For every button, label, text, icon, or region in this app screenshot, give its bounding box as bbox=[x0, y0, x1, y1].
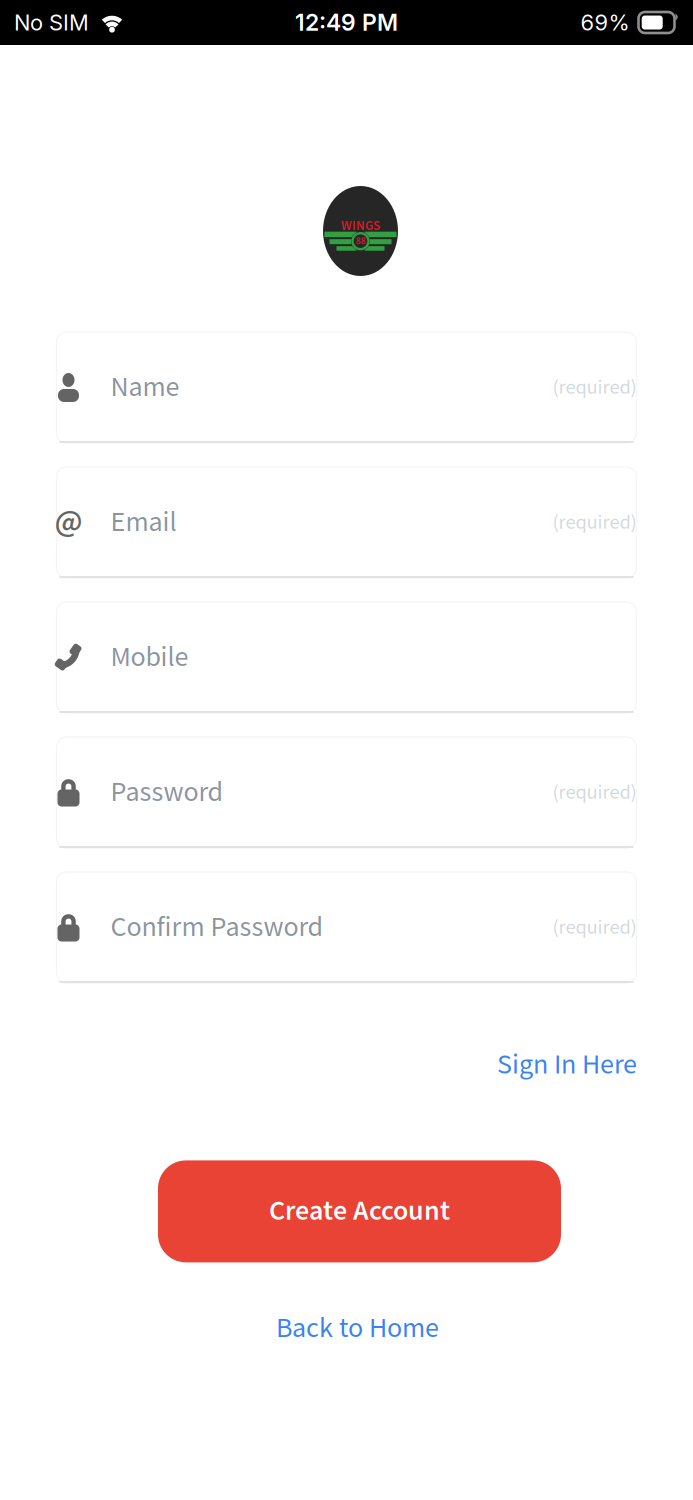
button[interactable]: @ bbox=[56, 467, 636, 578]
button[interactable]: Password bbox=[56, 737, 636, 848]
staticText: Sign In Here bbox=[497, 1047, 637, 1083]
staticText: Email bbox=[110, 504, 176, 541]
button[interactable]: Confirm Password bbox=[56, 872, 636, 983]
button[interactable]: Mobile bbox=[56, 602, 636, 713]
staticText: (required) bbox=[552, 779, 636, 806]
staticText: No SIM bbox=[14, 9, 89, 36]
staticText: Mobile bbox=[110, 639, 188, 676]
staticText: 12:49 PM bbox=[295, 9, 398, 36]
staticText: 69% bbox=[580, 9, 629, 36]
staticText: @ bbox=[54, 502, 82, 543]
staticText: Create Account bbox=[269, 1193, 450, 1230]
button[interactable]: Name bbox=[56, 332, 636, 443]
staticText: (required) bbox=[552, 914, 636, 941]
staticText: Back to Home bbox=[276, 1310, 439, 1347]
staticText: (required) bbox=[552, 374, 636, 401]
staticText: WINGS bbox=[341, 217, 380, 235]
staticText: Confirm Password bbox=[110, 909, 323, 946]
staticText: Password bbox=[110, 774, 223, 811]
button[interactable]: Create Account bbox=[158, 1160, 561, 1262]
staticText: Name bbox=[110, 369, 179, 406]
button[interactable]: Back to Home bbox=[276, 1310, 439, 1347]
staticText: 88 bbox=[355, 235, 365, 248]
staticText: (required) bbox=[552, 509, 636, 536]
button[interactable]: Sign In Here bbox=[497, 1047, 637, 1083]
